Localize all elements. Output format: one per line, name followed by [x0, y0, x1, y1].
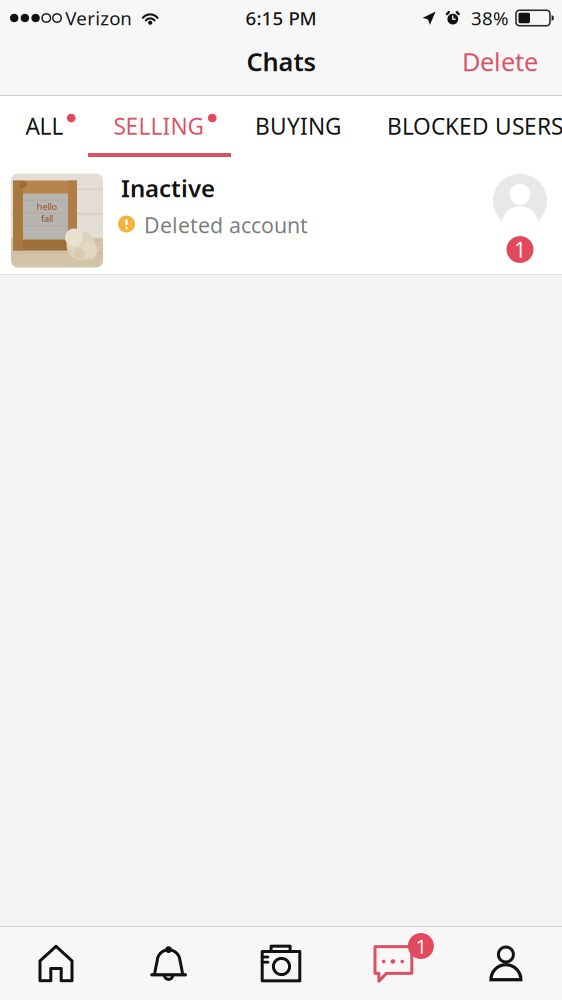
- staticText: Chats: [246, 45, 315, 78]
- button[interactable]: BLOCKED USERS: [368, 96, 562, 167]
- button[interactable]: ALL: [0, 96, 101, 167]
- button[interactable]: BUYING: [229, 96, 368, 167]
- button[interactable]: hello: [0, 167, 562, 274]
- staticText: 38%: [471, 6, 509, 30]
- staticText: ALL: [25, 111, 63, 141]
- staticText: SELLING: [113, 111, 204, 141]
- staticText: fall: [41, 212, 53, 225]
- button[interactable]: Chats: [337, 927, 450, 1000]
- staticText: BUYING: [255, 111, 342, 141]
- staticText: BLOCKED USERS: [387, 111, 562, 141]
- staticText: Deleted account: [144, 211, 308, 239]
- button[interactable]: SELLING: [101, 96, 229, 167]
- staticText: hello: [36, 200, 57, 213]
- staticText: 1: [415, 933, 426, 959]
- staticText: Inactive: [121, 172, 215, 204]
- staticText: 1: [514, 235, 526, 264]
- button[interactable]: Delete: [438, 38, 562, 93]
- staticText: Verizon: [65, 6, 132, 30]
- staticText: Delete: [462, 45, 538, 78]
- button[interactable]: Sell: [225, 927, 337, 1000]
- button[interactable]: Notifications: [112, 927, 225, 1000]
- button[interactable]: Home: [0, 927, 112, 1000]
- staticText: 6:15 PM: [245, 6, 316, 30]
- button[interactable]: Profile: [450, 927, 562, 1000]
